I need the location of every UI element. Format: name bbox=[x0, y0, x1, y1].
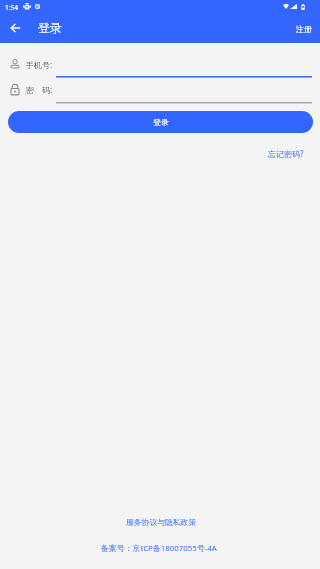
button[interactable]: Back bbox=[3, 16, 27, 40]
staticText: 忘记密码? bbox=[268, 148, 304, 159]
staticText: 服务协议与隐私政策 bbox=[126, 517, 197, 527]
button[interactable]: 密 码: bbox=[8, 81, 312, 104]
staticText: 注册 bbox=[296, 24, 312, 34]
button[interactable]: 忘记密码? bbox=[264, 145, 308, 162]
button[interactable]: 登录 bbox=[8, 111, 313, 133]
staticText: 登录 bbox=[38, 20, 62, 35]
staticText: 密 码: bbox=[26, 84, 53, 95]
staticText: 1:54 bbox=[5, 3, 19, 12]
staticText: 备案号：京ICP备18007055号-4A bbox=[101, 543, 217, 554]
staticText: 手机号: bbox=[26, 59, 53, 70]
button[interactable]: 手机号: bbox=[8, 55, 312, 78]
button[interactable]: 备案号：京ICP备18007055号-4A bbox=[95, 539, 223, 558]
staticText: 登录 bbox=[153, 117, 169, 127]
button[interactable]: 服务协议与隐私政策 bbox=[120, 513, 203, 531]
button[interactable]: 注册 bbox=[292, 21, 316, 37]
